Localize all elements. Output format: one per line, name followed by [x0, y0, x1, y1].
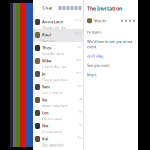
button[interactable]: Raul: [33, 29, 83, 42]
button[interactable]: Chat: [33, 1, 52, 15]
staticText: Thanks for the note: [42, 25, 66, 36]
staticText: Thu: [77, 136, 82, 139]
staticText: Kai: [42, 136, 48, 141]
button[interactable]: Message action: [125, 19, 127, 22]
button[interactable]: Message action: [129, 19, 131, 22]
staticText: Chat: [42, 5, 52, 11]
button[interactable]: Sam: [33, 81, 83, 94]
button[interactable]: Leo: [33, 107, 83, 120]
staticText: 9:12: [75, 19, 82, 22]
staticText: Nia: [42, 123, 48, 128]
staticText: Theo: [42, 45, 51, 50]
staticText: We'd love to see you at our event: [87, 39, 133, 49]
staticText: Mon: [76, 58, 82, 61]
button[interactable]: Anna Lane: [33, 16, 83, 29]
staticText: See attached: [42, 142, 63, 148]
button[interactable]: Mika: [33, 55, 83, 68]
staticText: See you tomorrow: [42, 38, 60, 49]
staticText: Sam: [42, 84, 50, 89]
staticText: Sun: [77, 84, 82, 87]
button[interactable]: Jo: [33, 68, 83, 81]
button[interactable]: Toolbar action: [66, 6, 69, 10]
staticText: Quick question: [42, 77, 67, 83]
staticText: Jo: [42, 71, 45, 76]
button[interactable]: Toolbar action: [58, 6, 61, 10]
staticText: Fri: [79, 110, 82, 113]
staticText: Check this out: [42, 64, 66, 70]
staticText: The Invitation: [87, 5, 122, 12]
staticText: Mon: [76, 71, 82, 74]
staticText: Mart: [87, 72, 96, 77]
staticText: Raul: [42, 32, 51, 37]
staticText: Great work: [42, 129, 62, 135]
staticText: Hi team,: [87, 29, 102, 35]
staticText: Mika: [42, 58, 51, 63]
staticText: Sent the deck: [42, 51, 64, 57]
button[interactable]: Nia: [33, 120, 83, 133]
staticText: On my way: [42, 116, 62, 122]
staticText: Fri: [79, 123, 82, 126]
staticText: Martin: [94, 18, 106, 23]
button[interactable]: Toolbar action: [70, 6, 73, 10]
button[interactable]: Kai: [33, 133, 83, 146]
staticText: on Friday.: [87, 53, 104, 59]
staticText: Sat: [79, 97, 82, 100]
button[interactable]: Toolbar action: [74, 6, 77, 10]
button[interactable]: Toolbar action: [78, 6, 81, 10]
staticText: See you soon,: [87, 63, 110, 68]
staticText: 8:40: [75, 32, 82, 35]
staticText: Leo: [42, 110, 48, 115]
button[interactable]: Toolbar action: [62, 6, 65, 10]
staticText: Notes attached: [42, 103, 67, 109]
button[interactable]: Message action: [133, 19, 135, 22]
staticText: Tue: [77, 45, 82, 48]
button[interactable]: Theo: [33, 42, 83, 55]
button[interactable]: Message action: [121, 19, 123, 22]
button[interactable]: Ivy: [33, 94, 83, 107]
staticText: Anna Lane: [42, 19, 63, 24]
staticText: Ivy: [42, 97, 47, 102]
staticText: Let's ship it: [42, 90, 62, 96]
